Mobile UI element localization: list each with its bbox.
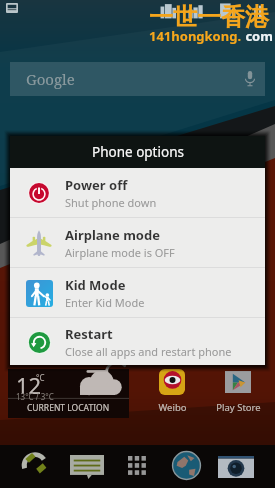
button[interactable]: Weibo: [141, 369, 203, 414]
button[interactable]: Camera: [209, 445, 262, 488]
button[interactable]: Restart: [10, 318, 265, 365]
staticText: Shut phone down: [65, 195, 157, 210]
staticText: 一世一香港: [149, 2, 269, 32]
other: Voice search: [245, 71, 255, 87]
staticText: Kid Mode: [65, 276, 126, 294]
staticText: Airplane mode is OFF: [65, 245, 175, 260]
button[interactable]: Airplane mode: [10, 218, 265, 267]
button[interactable]: Apps: [110, 444, 163, 487]
button[interactable]: Messaging: [60, 445, 113, 488]
button[interactable]: Play Store: [207, 369, 269, 414]
staticText: Close all apps and restart phone: [65, 344, 232, 359]
staticText: Play Store: [216, 401, 261, 414]
button[interactable]: 12: [8, 369, 129, 418]
staticText: CURRENT LOCATION: [27, 402, 110, 414]
staticText: Google: [26, 69, 75, 89]
button[interactable]: Kid Mode: [10, 268, 265, 317]
staticText: 13°C / 3°C: [16, 391, 54, 402]
staticText: °C: [36, 372, 45, 383]
staticText: Weibo: [158, 401, 187, 414]
staticText: 12: [16, 370, 42, 400]
button[interactable]: Google: [10, 62, 265, 96]
staticText: Restart: [65, 325, 113, 343]
staticText: 141hongkong.: [149, 27, 242, 45]
button[interactable]: Browser: [160, 444, 213, 487]
staticText: Airplane mode: [65, 226, 160, 244]
staticText: com: [242, 27, 273, 45]
staticText: Phone options: [92, 143, 184, 161]
staticText: Enter Kid Mode: [65, 295, 145, 310]
button[interactable]: Phone: [8, 444, 61, 487]
button[interactable]: Power off: [10, 168, 265, 217]
staticText: Power off: [65, 176, 128, 194]
